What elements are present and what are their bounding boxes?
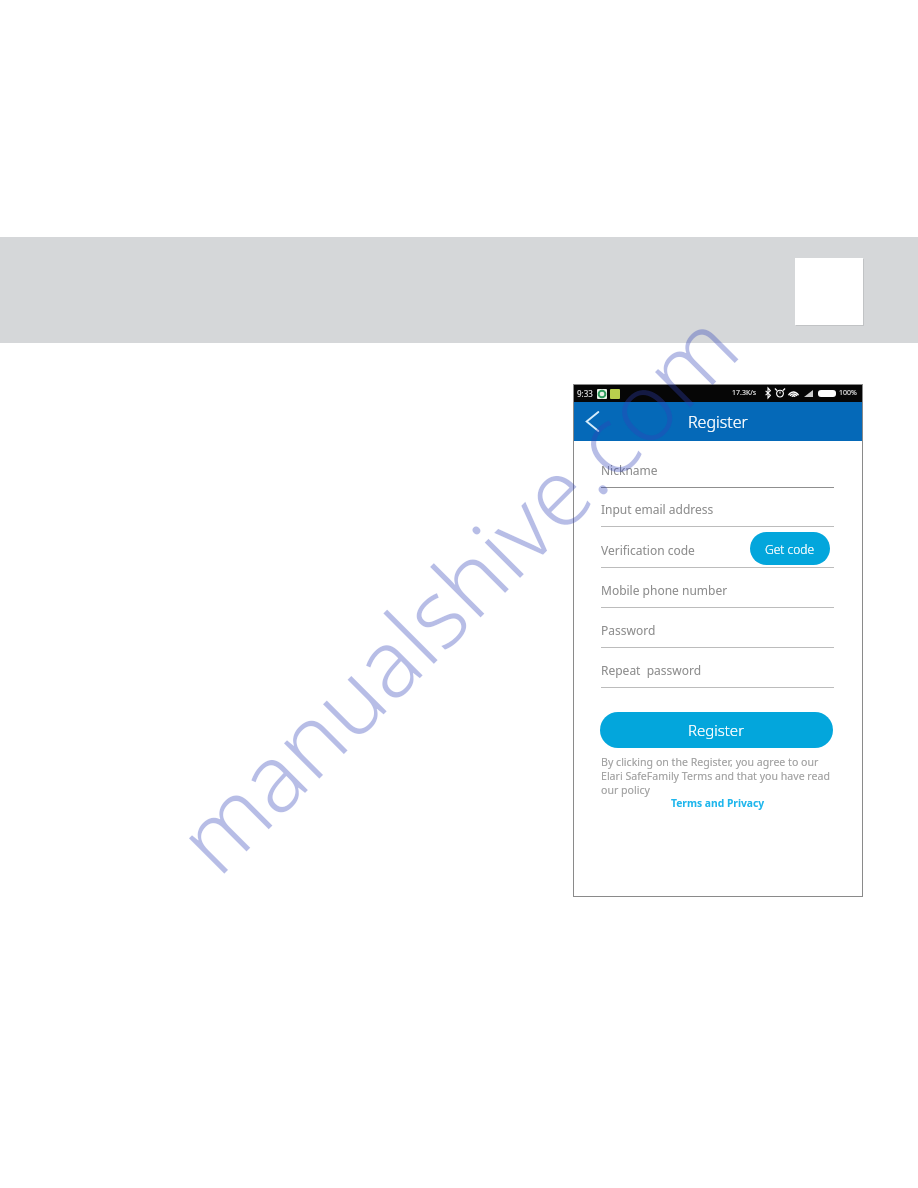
staticText: manualshive.com: [148, 283, 764, 899]
button[interactable]: Get code: [750, 532, 830, 565]
staticText: Nickname: [601, 462, 658, 478]
button[interactable]: Terms and Privacy: [671, 796, 765, 810]
staticText: Register: [688, 720, 745, 740]
staticText: Mobile phone number: [601, 582, 728, 598]
button[interactable]: Nickname: [601, 458, 834, 488]
button[interactable]: Back: [575, 402, 609, 441]
button[interactable]: Register: [600, 712, 833, 748]
staticText: Input email address: [601, 501, 714, 517]
staticText: Get code: [765, 541, 815, 557]
staticText: Terms and Privacy: [671, 796, 765, 810]
staticText: Repeat password: [601, 662, 702, 678]
button[interactable]: Mobile phone number: [601, 578, 834, 608]
staticText: Password: [601, 622, 656, 638]
button[interactable]: Password: [601, 618, 834, 648]
button[interactable]: Input email address: [601, 497, 834, 527]
staticText: 17.3K/s: [732, 388, 757, 398]
staticText: 100%: [839, 388, 857, 398]
staticText: By clicking on the Register, you agree t…: [601, 755, 819, 769]
staticText: Elari SafeFamily Terms and that you have…: [601, 769, 830, 783]
staticText: Verification code: [601, 542, 695, 558]
button[interactable]: Verification code: [601, 538, 834, 568]
staticText: our policy: [601, 783, 650, 797]
staticText: Register: [688, 411, 748, 433]
staticText: 9:33: [577, 388, 593, 399]
button[interactable]: Repeat password: [601, 658, 834, 688]
